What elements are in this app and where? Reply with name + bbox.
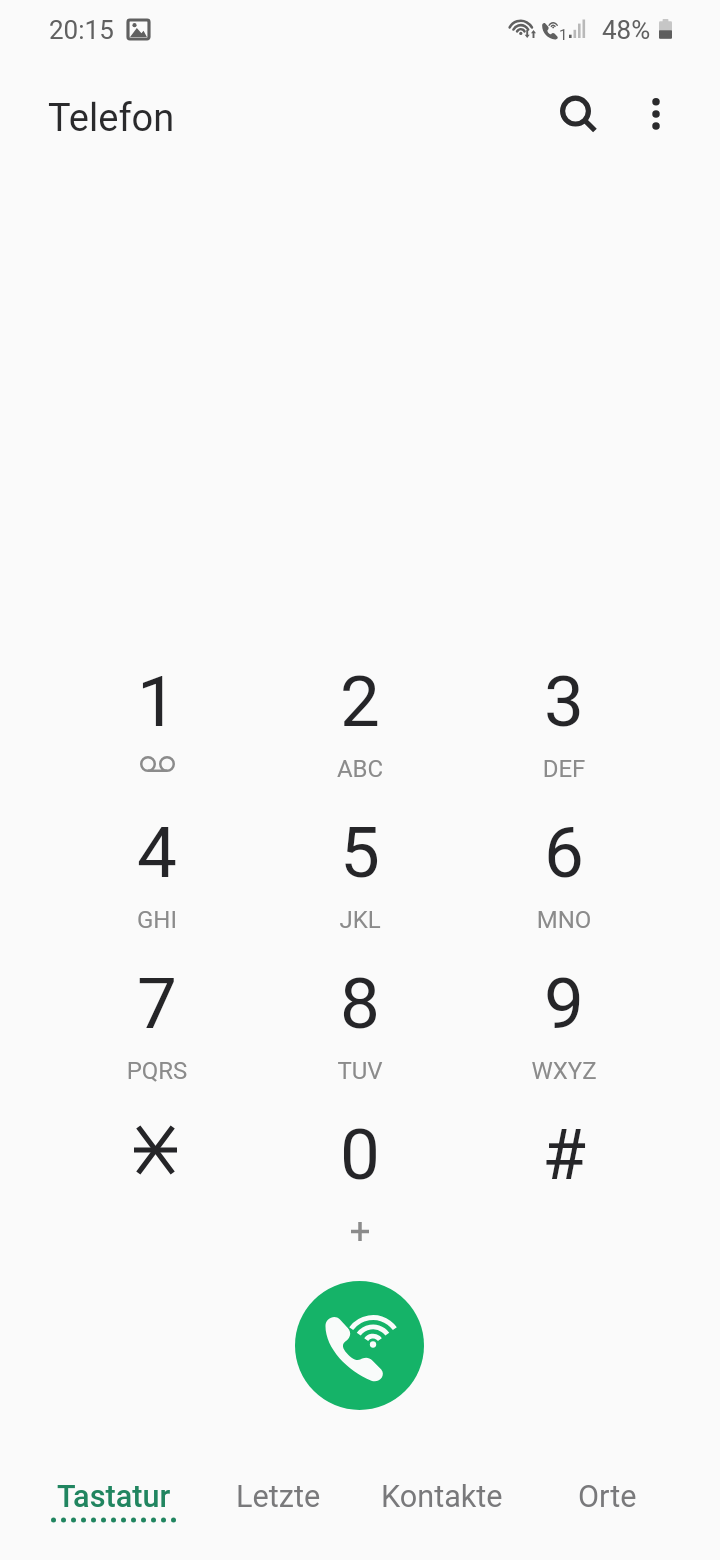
button[interactable] bbox=[56, 623, 259, 774]
button[interactable] bbox=[462, 1076, 665, 1227]
button[interactable] bbox=[259, 623, 462, 774]
staticText: # bbox=[514, 1113, 614, 1196]
button[interactable]: Kontakte bbox=[360, 1458, 524, 1542]
staticText: JKL bbox=[300, 906, 420, 934]
staticText: 9 bbox=[514, 962, 614, 1045]
staticText: 48% bbox=[602, 15, 651, 45]
staticText: DEF bbox=[504, 755, 624, 783]
button[interactable]: Orte bbox=[525, 1458, 689, 1542]
staticText: TUV bbox=[300, 1057, 420, 1085]
staticText: Telefon bbox=[48, 96, 175, 141]
button[interactable] bbox=[259, 1076, 462, 1227]
staticText: 0 bbox=[310, 1113, 410, 1196]
staticText: Tastatur bbox=[57, 1479, 171, 1515]
staticText: 7 bbox=[107, 962, 207, 1045]
button[interactable] bbox=[56, 1076, 259, 1227]
button[interactable] bbox=[259, 925, 462, 1076]
staticText: 8 bbox=[310, 962, 410, 1045]
button[interactable] bbox=[259, 774, 462, 925]
staticText: 6 bbox=[514, 811, 614, 894]
staticText: Letzte bbox=[236, 1479, 321, 1515]
button[interactable]: Anrufen bbox=[295, 1281, 424, 1410]
staticText: GHI bbox=[97, 906, 217, 934]
staticText: Kontakte bbox=[381, 1479, 503, 1515]
staticText: WXYZ bbox=[504, 1057, 624, 1085]
button[interactable] bbox=[462, 925, 665, 1076]
staticText: Orte bbox=[578, 1479, 637, 1515]
staticText: 5 bbox=[310, 811, 410, 894]
staticText: 2 bbox=[310, 660, 410, 743]
button[interactable]: Letzte bbox=[196, 1458, 360, 1542]
staticText: PQRS bbox=[97, 1057, 217, 1085]
staticText: 1 bbox=[107, 660, 207, 743]
button[interactable] bbox=[56, 925, 259, 1076]
button[interactable]: Weitere Optionen bbox=[622, 80, 690, 148]
staticText: 20:15 bbox=[49, 15, 114, 45]
button[interactable]: Tastatur bbox=[32, 1458, 196, 1542]
staticText: 3 bbox=[514, 660, 614, 743]
staticText: 4 bbox=[107, 811, 207, 894]
staticText: 1 bbox=[559, 26, 568, 44]
button[interactable] bbox=[462, 623, 665, 774]
staticText: ABC bbox=[300, 755, 420, 783]
button[interactable] bbox=[462, 774, 665, 925]
staticText: MNO bbox=[504, 906, 624, 934]
button[interactable]: Suchen bbox=[544, 80, 612, 148]
button[interactable] bbox=[56, 774, 259, 925]
